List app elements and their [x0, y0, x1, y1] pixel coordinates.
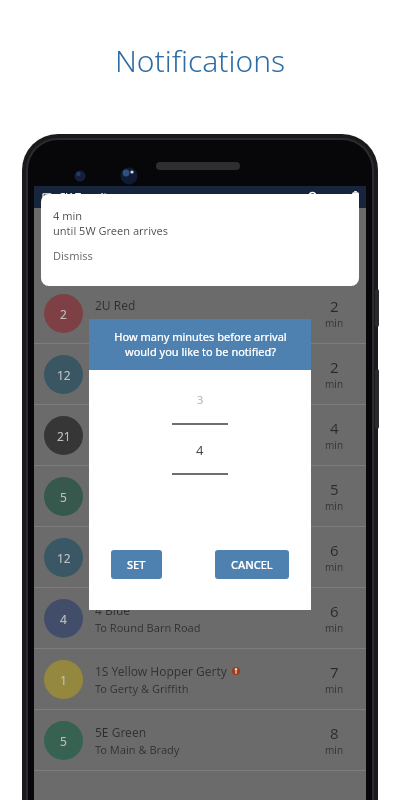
- staticText: 21: [57, 428, 71, 444]
- staticText: 5: [60, 489, 67, 505]
- staticText: min: [325, 377, 344, 391]
- button[interactable]: 4 min: [41, 194, 359, 286]
- button[interactable]: 12: [34, 527, 366, 588]
- button[interactable]: 2: [34, 283, 366, 344]
- button[interactable]: 4: [196, 441, 204, 459]
- staticText: min: [325, 560, 344, 574]
- staticText: To Main & Brady: [95, 742, 180, 757]
- staticText: 4: [60, 611, 67, 627]
- staticText: 2: [330, 357, 339, 377]
- staticText: 2: [330, 296, 339, 316]
- staticText: 4 min: [53, 208, 83, 223]
- staticText: 5: [330, 479, 339, 499]
- button[interactable]: 21: [34, 405, 366, 466]
- button[interactable]: Dismiss: [53, 248, 93, 263]
- staticText: 4 Blue: [95, 602, 131, 618]
- staticText: CU Transit: [59, 190, 107, 204]
- staticText: Dismiss: [53, 248, 93, 263]
- staticText: 3: [197, 392, 204, 407]
- staticText: 12: [57, 550, 71, 566]
- staticText: 5E Green: [95, 724, 147, 740]
- staticText: To Gerty & Griffith: [95, 681, 189, 696]
- staticText: 2U Red: [95, 297, 136, 313]
- button[interactable]: 1: [34, 649, 366, 710]
- staticText: How many minutes before arrival would yo…: [114, 329, 287, 359]
- staticText: CANCEL: [231, 557, 273, 572]
- staticText: min: [325, 438, 344, 452]
- staticText: 6: [330, 601, 339, 621]
- staticText: To Lincoln Square: [95, 315, 186, 330]
- staticText: 7: [330, 662, 339, 682]
- staticText: 4: [196, 441, 204, 459]
- staticText: min: [325, 499, 344, 513]
- button[interactable]: 4: [34, 588, 366, 649]
- staticText: min: [325, 316, 344, 330]
- staticText: 12 Teal: [95, 541, 135, 557]
- staticText: min: [325, 621, 344, 635]
- staticText: until 5W Green arrives: [53, 223, 169, 238]
- button[interactable]: 3: [197, 392, 204, 407]
- button[interactable]: CANCEL: [215, 550, 289, 579]
- staticText: 8: [330, 723, 339, 743]
- staticText: SET: [127, 557, 146, 572]
- staticText: 2: [60, 306, 67, 322]
- button[interactable]: SET: [111, 550, 162, 579]
- staticText: min: [325, 682, 344, 696]
- staticText: Notifications: [115, 40, 286, 81]
- staticText: To Windsor: [95, 559, 153, 574]
- staticText: min: [325, 743, 344, 757]
- button[interactable]: 5: [34, 710, 366, 771]
- staticText: 12: [57, 367, 71, 383]
- button[interactable]: 5: [34, 466, 366, 527]
- staticText: 1: [60, 672, 67, 688]
- button[interactable]: 12: [34, 344, 366, 405]
- staticText: To Round Barn Road: [95, 620, 201, 635]
- staticText: 12 Teal: [95, 358, 135, 374]
- staticText: 6: [330, 540, 339, 560]
- staticText: 4: [330, 418, 339, 438]
- staticText: 1S Yellow Hopper Gerty: [95, 663, 227, 679]
- staticText: 5: [60, 733, 67, 749]
